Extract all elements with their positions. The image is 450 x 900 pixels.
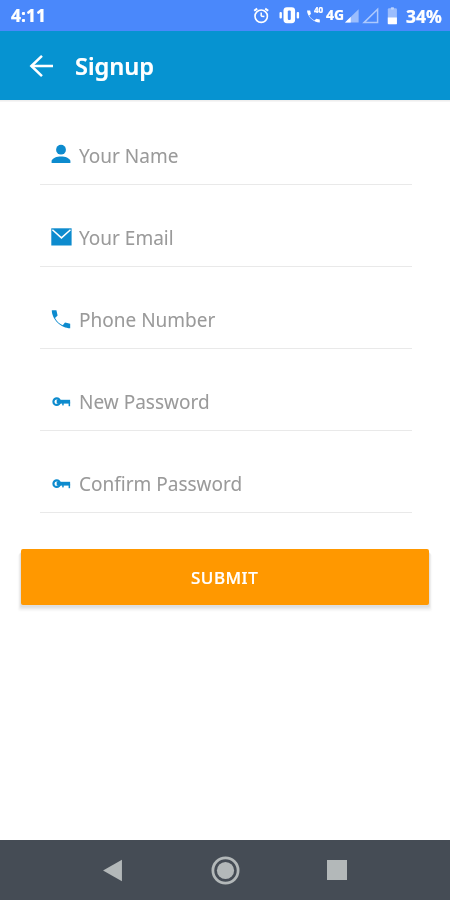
button[interactable]: Home: [201, 846, 249, 894]
button[interactable]: Recent apps: [313, 846, 361, 894]
button[interactable]: Back: [88, 846, 136, 894]
button[interactable]: Your Name: [0, 102, 450, 184]
button[interactable]: Confirm Password: [0, 430, 450, 512]
staticText: SUBMIT: [191, 566, 259, 589]
staticText: Confirm Password: [79, 471, 243, 497]
button[interactable]: New Password: [0, 348, 450, 430]
staticText: Your Email: [79, 225, 174, 251]
staticText: Phone Number: [79, 307, 216, 333]
button[interactable]: Your Email: [0, 184, 450, 266]
staticText: Signup: [75, 50, 154, 82]
button[interactable]: Phone Number: [0, 266, 450, 348]
staticText: 34%: [406, 4, 442, 28]
button[interactable]: Back: [17, 42, 65, 90]
button[interactable]: SUBMIT: [21, 549, 429, 605]
staticText: Your Name: [79, 143, 179, 169]
staticText: 40: [314, 4, 324, 15]
staticText: 4G: [326, 5, 345, 24]
staticText: New Password: [79, 389, 210, 415]
staticText: 4:11: [11, 3, 46, 27]
